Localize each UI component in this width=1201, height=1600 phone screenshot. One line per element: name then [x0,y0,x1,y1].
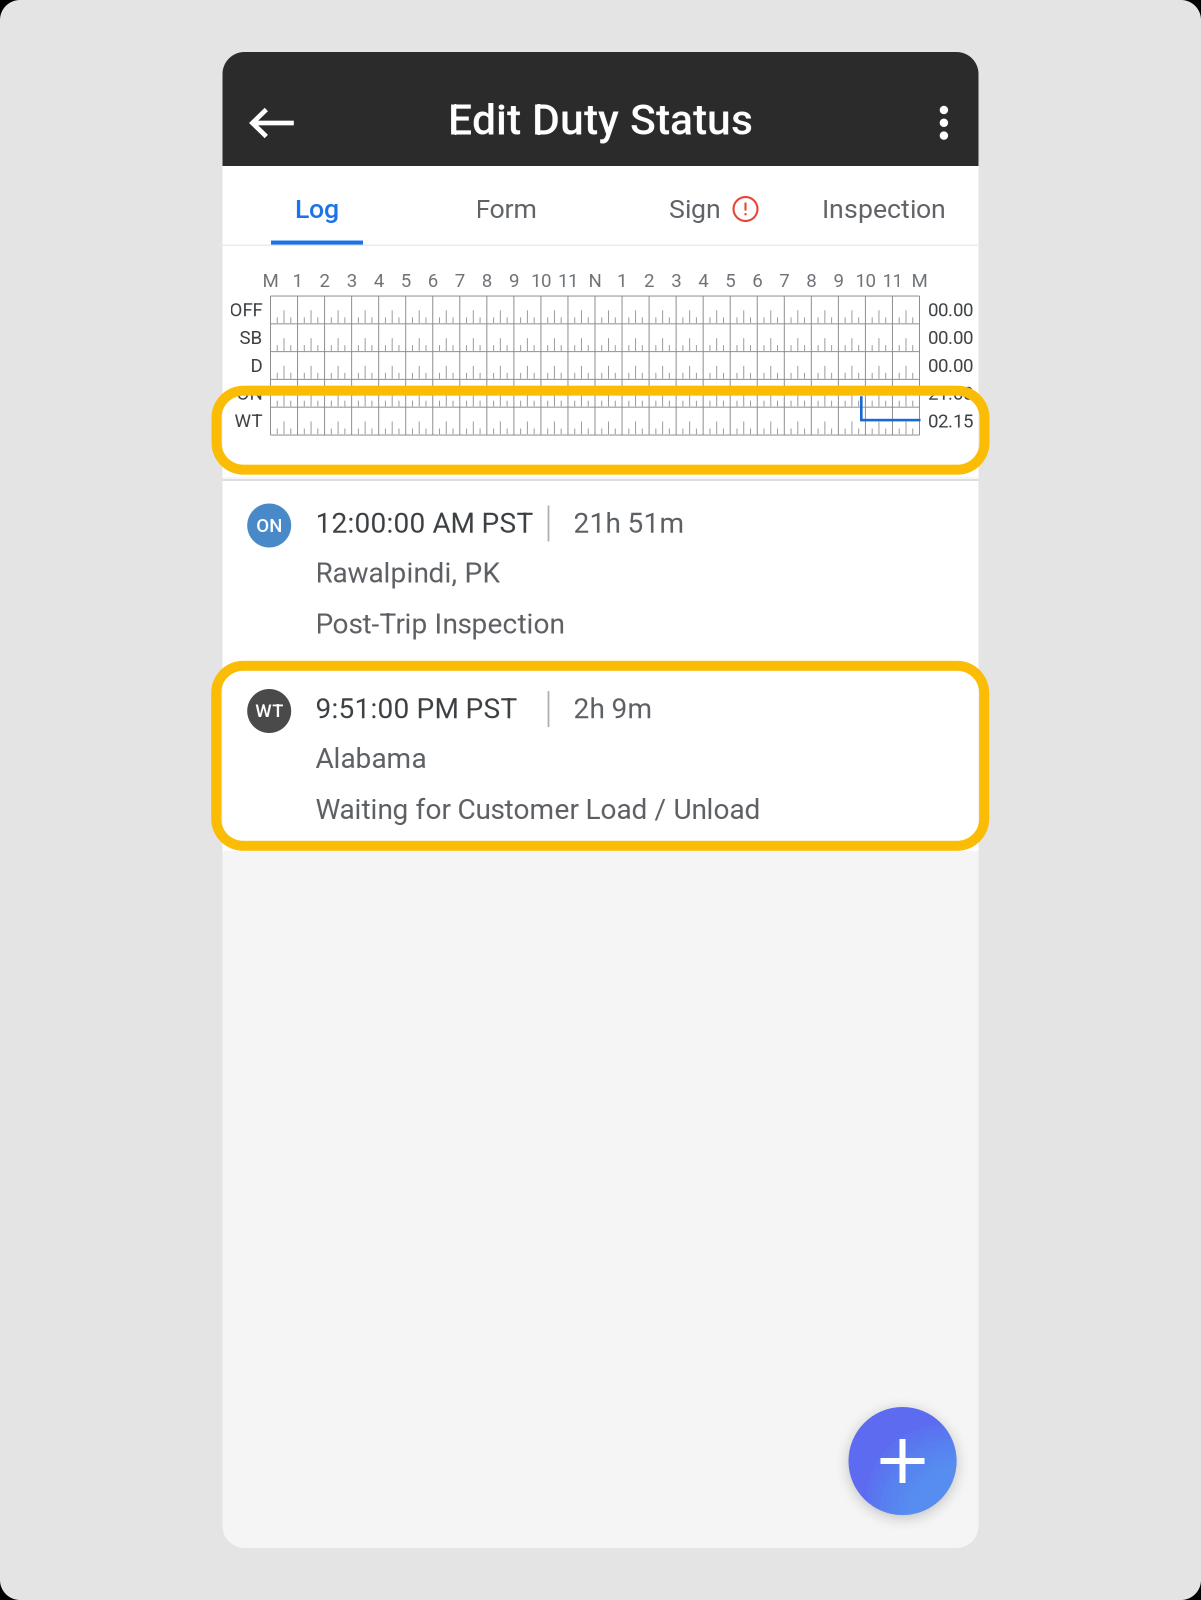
staticText: 5 [725,270,735,291]
staticText: 21h 51m [573,507,684,540]
staticText: 9:51:00 PM PST [315,692,517,725]
staticText: 4 [698,270,708,291]
button[interactable]: ON [222,480,978,665]
staticText: 7 [455,270,465,291]
staticText: 10 [855,270,875,291]
staticText: ON [256,515,282,536]
staticText: Post-Trip Inspection [315,608,564,640]
staticText: 11 [882,270,902,291]
staticText: 7 [779,270,789,291]
staticText: 1 [617,270,627,291]
staticText: Form [475,193,536,225]
button[interactable]: More options [917,89,971,157]
staticText: WT [234,410,262,432]
button[interactable]: Back [249,99,317,167]
staticText: 00.00 [928,327,973,349]
staticText: Waiting for Customer Load / Unload [315,793,760,826]
button[interactable]: Sign [600,166,789,246]
staticText: SB [239,327,262,349]
staticText: ON [236,382,262,404]
staticText: 8 [482,270,492,291]
staticText: M [911,270,927,291]
staticText: Sign [669,193,721,225]
button[interactable]: Form [411,166,600,246]
staticText: 2 [644,270,654,291]
staticText: 00.00 [928,299,973,321]
staticText: 12:00:00 AM PST [315,507,533,540]
button[interactable]: WT [222,665,978,851]
staticText: OFF [229,299,262,321]
staticText: Rawalpindi, PK [315,557,500,589]
staticText: 2 [320,270,330,291]
staticText: Edit Duty Status [448,95,753,145]
staticText: 3 [347,270,357,291]
staticText: WT [255,700,283,722]
staticText: 21.00 [928,382,973,404]
staticText: Alabama [315,742,426,775]
staticText: 6 [428,270,438,291]
staticText: 9 [833,270,843,291]
button[interactable]: Log [222,166,411,246]
staticText: M [262,270,278,291]
staticText: 8 [806,270,816,291]
staticText: 6 [752,270,762,291]
staticText: 10 [531,270,551,291]
staticText: 00.00 [928,355,973,376]
staticText: D [250,355,262,376]
staticText: 5 [401,270,411,291]
button[interactable]: Inspection [789,166,978,246]
staticText: 1 [292,270,302,291]
staticText: 02.15 [928,410,973,432]
staticText: 4 [374,270,384,291]
button[interactable]: Add duty status [848,1407,956,1515]
staticText: Log [295,193,339,225]
staticText: 3 [671,270,681,291]
staticText: 11 [558,270,578,291]
staticText: N [588,270,601,291]
staticText: 9 [509,270,519,291]
staticText: Inspection [822,193,946,225]
staticText: 2h 9m [573,692,652,725]
